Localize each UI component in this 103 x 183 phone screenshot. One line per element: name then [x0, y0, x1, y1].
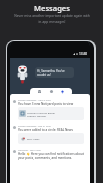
- staticText: REAL News: [27, 137, 40, 140]
- button[interactable]: Posted Yesterday · April 2 2021: [10, 99, 90, 125]
- button[interactable]: Circles: [48, 88, 55, 94]
- staticText: Never miss another important update agai…: [14, 13, 90, 24]
- staticText: Posted Yesterday · April 2 2021: [18, 99, 52, 102]
- button[interactable]: Xtreme's Notiyard Bambi Support Moment: [18, 107, 84, 120]
- button[interactable]: Posted Yesterday · Feb 21 2021: [10, 125, 90, 149]
- staticText: Welcome · Feb 2 2021: [18, 149, 42, 152]
- button[interactable]: Welcome · Feb 2 2021: [10, 149, 90, 171]
- staticText: You were added to a circle: REAL News: [18, 128, 73, 132]
- staticText: Hi, Samantha. You've caught us!: [37, 69, 65, 76]
- staticText: 13:30: [79, 52, 88, 56]
- staticText: Xtreme's Notiyard Bambi Support Moment: [27, 111, 55, 117]
- staticText: Hello 👋 Here you can find notifications …: [18, 152, 84, 160]
- staticText: Messages: [34, 3, 70, 13]
- staticText: You have 3 new Notiyard posts to view: [18, 102, 74, 106]
- button[interactable]: REAL News: [18, 133, 84, 144]
- button[interactable]: Notifications: [59, 88, 66, 94]
- button[interactable]: Messages: [36, 88, 43, 94]
- staticText: Posted Yesterday · Feb 21 2021: [18, 125, 52, 128]
